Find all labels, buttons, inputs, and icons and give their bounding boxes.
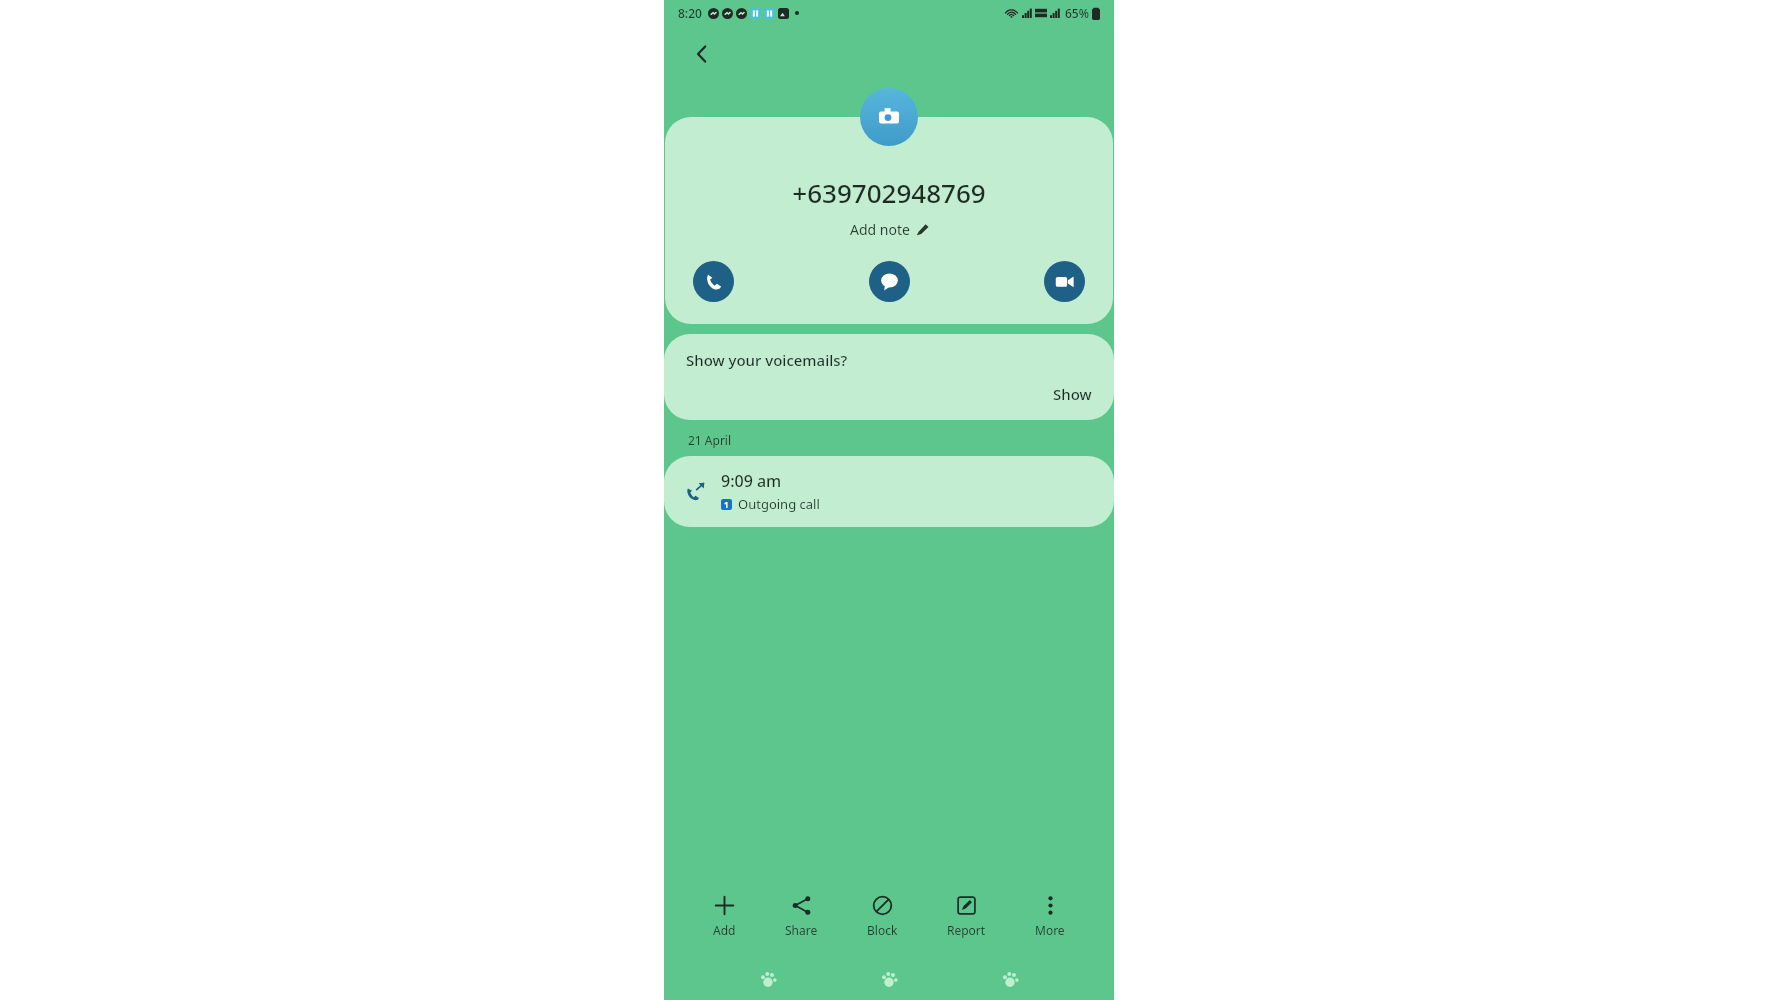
button[interactable]: Video call bbox=[1044, 261, 1085, 302]
staticText: Show bbox=[1053, 384, 1092, 404]
button[interactable]: Add note bbox=[844, 218, 935, 241]
staticText: 1 bbox=[724, 499, 729, 510]
button[interactable]: Report bbox=[937, 891, 996, 942]
staticText: 21 April bbox=[688, 432, 732, 448]
button[interactable]: Message bbox=[869, 261, 910, 302]
staticText: Share bbox=[785, 922, 818, 938]
button[interactable]: More bbox=[1025, 891, 1075, 942]
button[interactable]: Recents bbox=[751, 962, 785, 996]
staticText: Report bbox=[947, 922, 986, 938]
button[interactable]: Back bbox=[993, 962, 1027, 996]
staticText: Outgoing call bbox=[738, 495, 820, 513]
button[interactable]: Share bbox=[775, 891, 828, 942]
staticText: More bbox=[1035, 922, 1065, 938]
staticText: 65% bbox=[1065, 5, 1089, 21]
button[interactable]: Show your voicemails? bbox=[664, 334, 1114, 420]
staticText: Add note bbox=[850, 220, 910, 239]
button[interactable]: Back bbox=[682, 34, 722, 74]
staticText: 9:09 am bbox=[721, 470, 782, 492]
staticText: 8:20 bbox=[678, 5, 702, 21]
staticText: +639702948769 bbox=[665, 175, 1113, 210]
button[interactable]: Call bbox=[693, 261, 734, 302]
staticText: Add bbox=[713, 922, 736, 938]
button[interactable]: Add contact photo bbox=[860, 88, 918, 146]
button[interactable]: Home bbox=[872, 962, 906, 996]
staticText: Show your voicemails? bbox=[686, 350, 848, 370]
button[interactable]: Add bbox=[703, 891, 746, 942]
button[interactable]: Block bbox=[857, 891, 908, 942]
button[interactable]: 9:09 am bbox=[664, 456, 1114, 527]
staticText: Block bbox=[867, 922, 898, 938]
